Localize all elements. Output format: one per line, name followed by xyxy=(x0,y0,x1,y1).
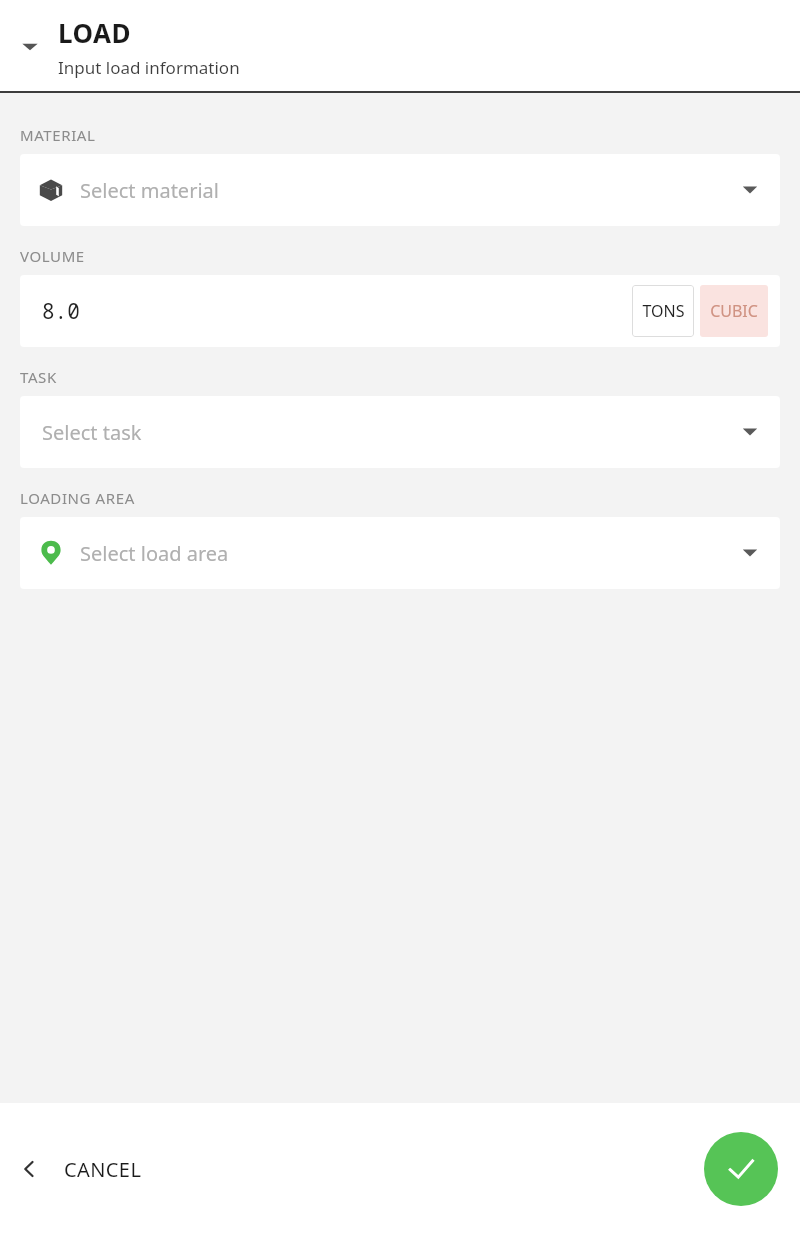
staticText: TONS xyxy=(642,300,685,322)
button[interactable]: Select task xyxy=(20,396,780,468)
button[interactable]: 8.0 xyxy=(20,275,780,347)
staticText: MATERIAL xyxy=(20,125,96,145)
button[interactable]: TONS xyxy=(632,285,694,337)
staticText: VOLUME xyxy=(20,246,85,266)
button[interactable]: Confirm xyxy=(704,1132,778,1206)
staticText: Select task xyxy=(42,419,142,446)
staticText: Input load information xyxy=(58,56,240,79)
staticText: CUBIC xyxy=(710,300,758,322)
button[interactable]: CUBIC xyxy=(700,285,768,337)
button[interactable]: Select material xyxy=(20,154,780,226)
button[interactable]: Collapse xyxy=(18,35,42,59)
staticText: TASK xyxy=(20,367,57,387)
button[interactable]: Select load area xyxy=(20,517,780,589)
staticText: 8.0 xyxy=(42,297,80,326)
button[interactable]: CANCEL xyxy=(18,1137,142,1201)
staticText: CANCEL xyxy=(64,1156,142,1183)
staticText: Select material xyxy=(80,177,219,204)
staticText: Select load area xyxy=(80,540,229,567)
staticText: LOAD xyxy=(58,15,132,50)
staticText: LOADING AREA xyxy=(20,488,135,508)
